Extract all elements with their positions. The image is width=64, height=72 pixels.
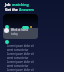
staticText: Answers (19, 7, 34, 12)
staticText: Job (5, 2, 12, 7)
staticText: today (11, 32, 18, 36)
staticText: Lorem ipsum dolor sit amet consectetur (7, 68, 35, 72)
button[interactable]: Work at home (3, 14, 38, 39)
staticText: Lorem ipsum dolor sit amet consectetur (7, 44, 35, 52)
staticText: Work at home (11, 28, 29, 32)
staticText: Lorem ipsum dolor sit amet consectetur (7, 60, 35, 68)
staticText: Lorem ipsum dolor sit amet consectetur (7, 52, 35, 60)
staticText: Get the (5, 7, 19, 12)
staticText: matching (12, 2, 29, 7)
